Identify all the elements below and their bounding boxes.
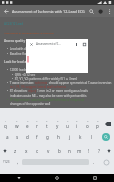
- staticText: 0: [97, 119, 99, 122]
- staticText: i: [76, 123, 78, 129]
- staticText: 7: [67, 119, 69, 122]
- staticText: j: [69, 134, 71, 140]
- staticText: ,: [17, 159, 19, 165]
- staticText: p: [96, 123, 99, 129]
- staticText: g: [46, 134, 49, 140]
- staticText: b: [58, 148, 61, 154]
- button[interactable]: f: [32, 130, 42, 143]
- button[interactable]: z: [10, 144, 21, 157]
- button[interactable]: 1: [0, 117, 11, 131]
- staticText: Assessment of I...: [36, 42, 61, 46]
- button[interactable]: 4: [32, 117, 42, 131]
- button[interactable]: .: [89, 155, 99, 169]
- button[interactable]: k: [75, 130, 86, 143]
- button[interactable]: Next result: [80, 39, 88, 49]
- button[interactable]: 3: [22, 117, 32, 131]
- button[interactable]: ,: [13, 155, 22, 169]
- staticText: 9: [87, 119, 89, 122]
- staticText: l: [91, 134, 93, 140]
- button[interactable]: h: [53, 130, 64, 143]
- button[interactable]: Close find bar: [26, 39, 36, 49]
- staticText: x: [25, 148, 28, 154]
- button[interactable]: Emoji: [99, 155, 114, 169]
- staticText: Assess quality of tracing: [4, 39, 114, 43]
- staticText: • T wave inversion: ischemia, should app…: [7, 81, 114, 85]
- button[interactable]: Search: [97, 130, 114, 143]
- staticText: indicates acute MI – may also be seen wi…: [10, 94, 114, 98]
- staticText: f: [36, 134, 38, 140]
- staticText: w: [15, 123, 19, 129]
- staticText: d: [26, 134, 29, 140]
- button[interactable]: Shift: [0, 144, 10, 157]
- staticText: ACLS/12 Lead: [4, 22, 114, 26]
- staticText: z: [14, 148, 17, 154]
- button[interactable]: Back: [0, 5, 12, 17]
- staticText: Assessment of Ischemia with 12-Lead ECG: [12, 9, 85, 14]
- staticText: Assessment of Ischemia with 12-Lead ECG: [4, 31, 114, 34]
- staticText: Look for lead abnormalities: [4, 60, 114, 64]
- staticText: • QRS: <0.12 sec: [12, 73, 114, 77]
- button[interactable]: More options: [105, 5, 114, 17]
- staticText: v: [47, 148, 50, 154]
- button[interactable]: d: [22, 130, 32, 143]
- button[interactable]: c: [32, 144, 43, 157]
- button[interactable]: 2: [11, 117, 22, 131]
- staticText: • ST, V1, V2: patterns differ widely (V1…: [12, 77, 114, 81]
- button[interactable]: m: [74, 144, 84, 157]
- staticText: 1: [5, 119, 7, 122]
- staticText: ?: [98, 148, 100, 154]
- button[interactable]: 5: [42, 117, 52, 131]
- button[interactable]: 7: [62, 117, 72, 131]
- button[interactable]: Previous result: [73, 39, 80, 49]
- button[interactable]: n: [64, 144, 74, 157]
- button[interactable]: Backspace: [102, 117, 114, 131]
- staticText: k: [79, 134, 82, 140]
- staticText: a: [6, 134, 9, 140]
- button[interactable]: v: [43, 144, 54, 157]
- staticText: ?123: [3, 160, 10, 164]
- staticText: m: [77, 148, 82, 154]
- button[interactable]: ?: [94, 144, 104, 157]
- staticText: u: [66, 123, 69, 129]
- button[interactable]: s: [12, 130, 22, 143]
- button[interactable]: l: [86, 130, 97, 143]
- staticText: n: [68, 148, 71, 154]
- staticText: • Baseline flat and free of artifact: [7, 52, 114, 56]
- staticText: c: [36, 148, 39, 154]
- button[interactable]: Bookmark: [96, 5, 105, 17]
- staticText: 6: [57, 119, 59, 122]
- staticText: 3: [27, 119, 29, 122]
- staticText: o: [86, 123, 89, 129]
- staticText: y: [56, 123, 59, 129]
- button[interactable]: g: [42, 130, 53, 143]
- staticText: .: [93, 159, 95, 165]
- staticText: 5: [46, 119, 48, 122]
- staticText: e: [26, 123, 29, 129]
- button[interactable]: 6: [52, 117, 62, 131]
- button[interactable]: x: [21, 144, 32, 157]
- staticText: changes of the opposite wall: [10, 102, 114, 106]
- button[interactable]: Recent apps: [76, 174, 114, 182]
- button[interactable]: Shift: [104, 144, 114, 157]
- button[interactable]: a: [2, 130, 12, 143]
- button[interactable]: b: [54, 144, 64, 157]
- staticText: s: [16, 134, 19, 140]
- staticText: • 12000 leads - anterior, septal, latera…: [7, 68, 114, 72]
- button[interactable]: 9: [82, 117, 92, 131]
- staticText: t: [46, 123, 48, 129]
- button[interactable]: ?123: [0, 155, 13, 169]
- button[interactable]: Search: [87, 5, 96, 17]
- button[interactable]: 0: [92, 117, 102, 131]
- staticText: in I, V5, V6 suggest lateral wall ischem…: [10, 85, 114, 89]
- button[interactable]: !: [84, 144, 94, 157]
- staticText: 8: [76, 119, 78, 122]
- button[interactable]: Home: [38, 174, 76, 182]
- button[interactable]: Back: [0, 174, 38, 182]
- staticText: 4: [36, 119, 38, 122]
- button[interactable]: j: [64, 130, 75, 143]
- button[interactable]: 8: [72, 117, 82, 131]
- staticText: !: [88, 148, 90, 154]
- staticText: h: [57, 134, 60, 140]
- staticText: • ST depression: subendocardial ischemia…: [7, 98, 114, 102]
